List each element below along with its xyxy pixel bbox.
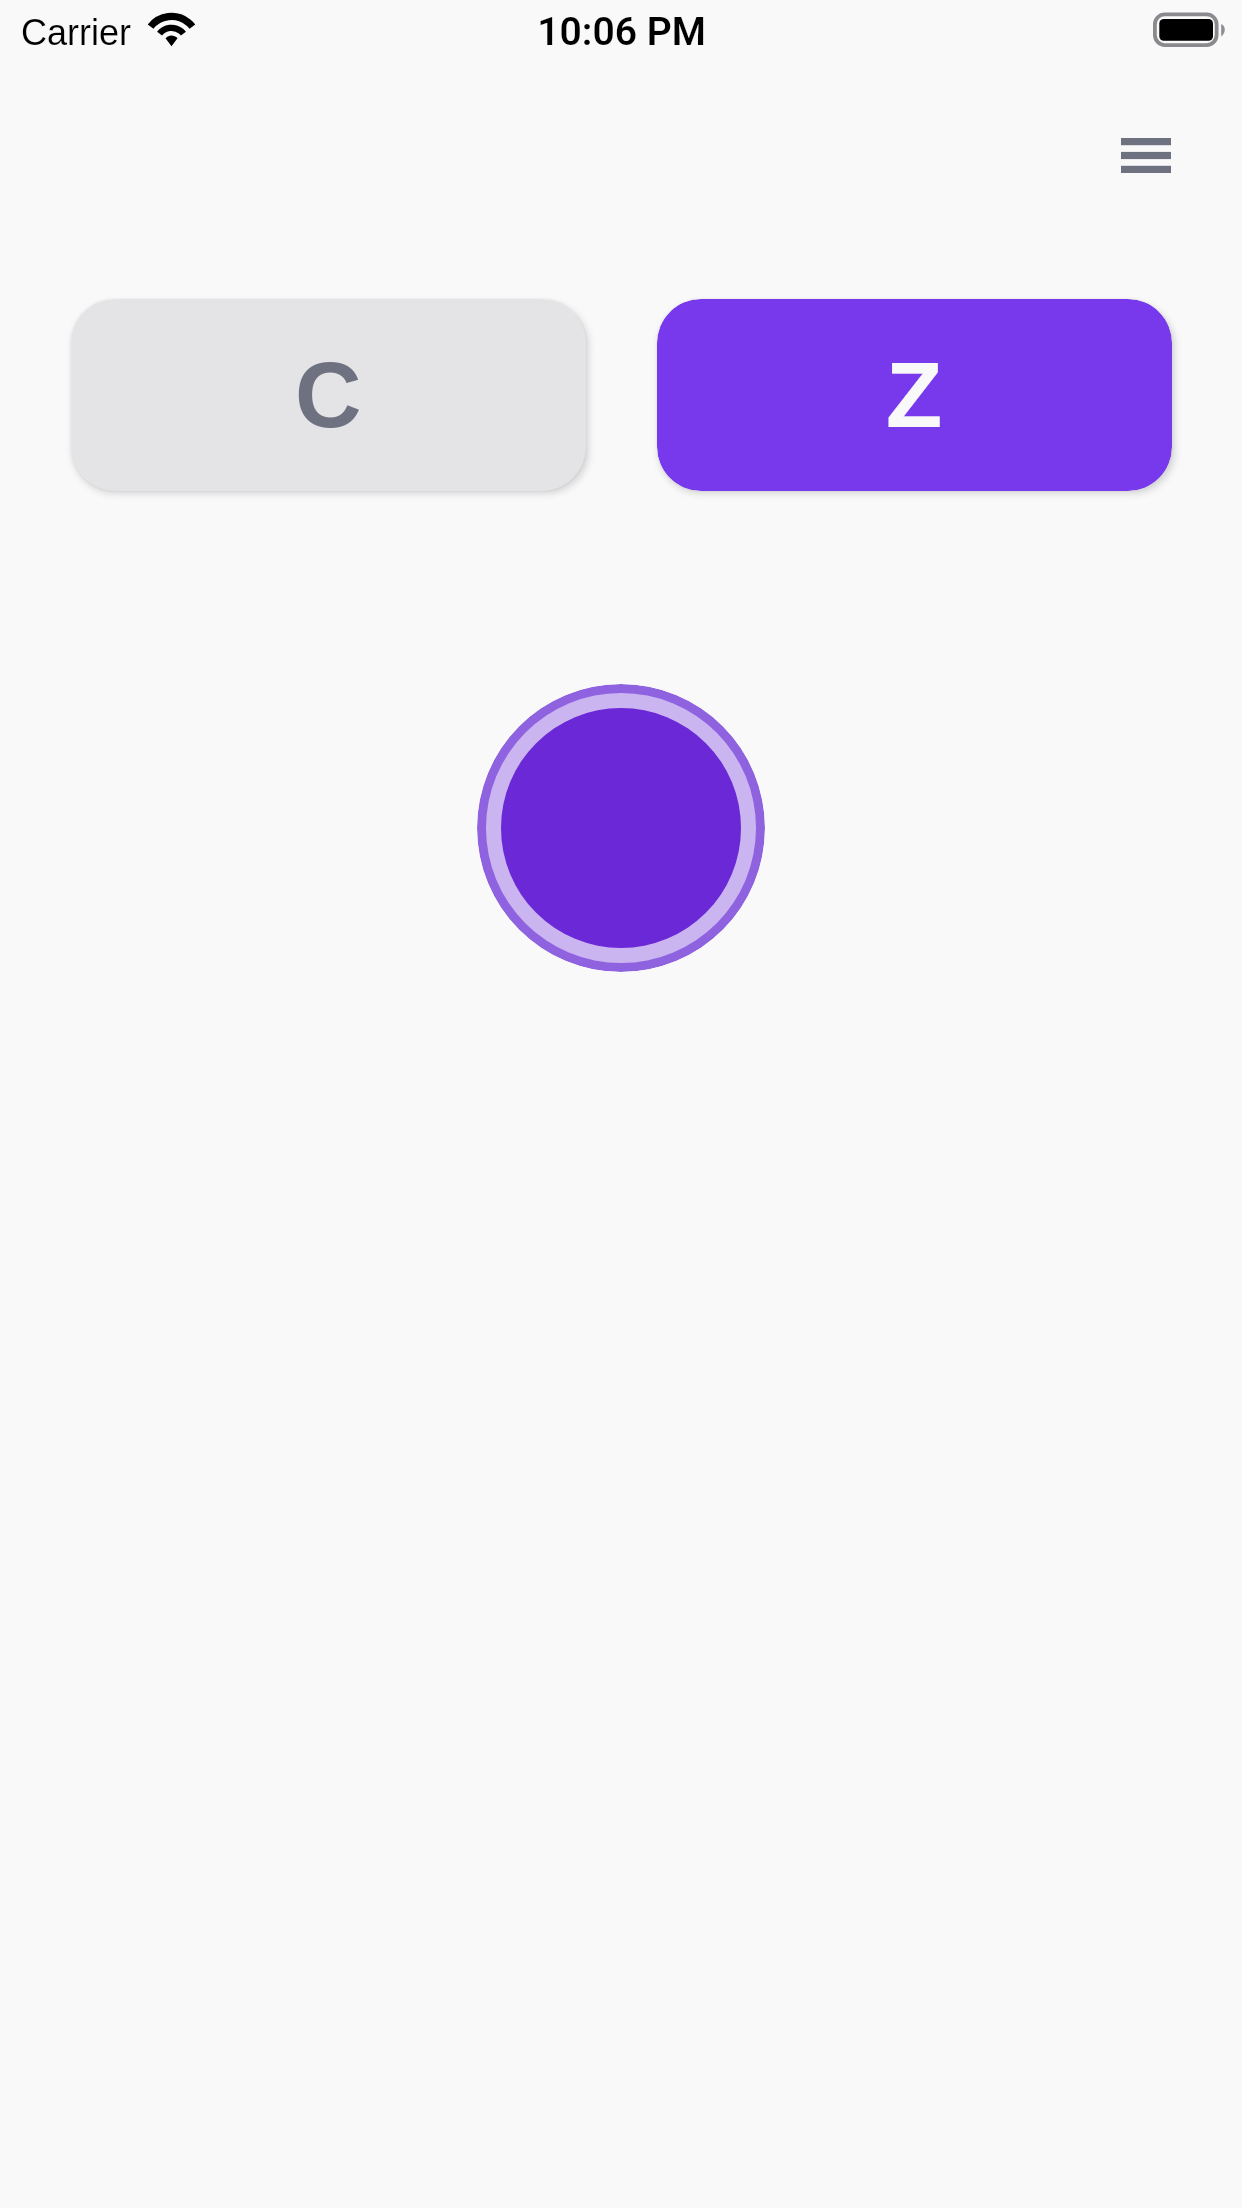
button[interactable]: Z: [657, 299, 1172, 491]
staticText: Carrier: [21, 12, 132, 52]
staticText: C: [295, 344, 362, 447]
button[interactable]: Menu: [1097, 131, 1195, 179]
button[interactable]: Record: [477, 684, 765, 972]
button[interactable]: C: [71, 299, 586, 491]
staticText: Z: [886, 344, 943, 447]
staticText: 10:06 PM: [537, 9, 706, 55]
